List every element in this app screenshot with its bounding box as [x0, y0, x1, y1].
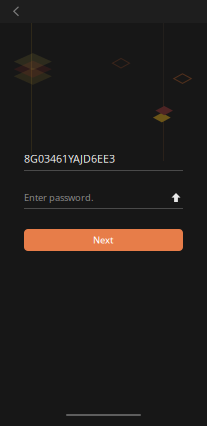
staticText: 8G03461YAJD6EE3: [24, 151, 115, 166]
button[interactable]: Show password: [169, 192, 183, 203]
button[interactable]: Back: [0, 0, 29, 23]
staticText: Next: [93, 234, 114, 246]
button[interactable]: Next: [24, 229, 183, 251]
staticText: Enter password.: [24, 191, 94, 204]
